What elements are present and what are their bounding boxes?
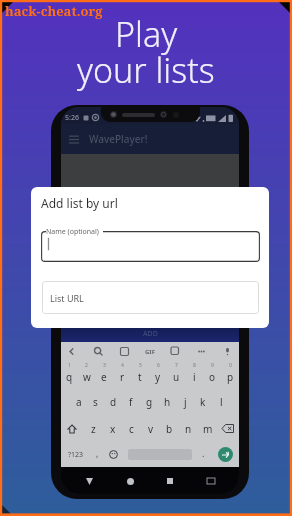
button[interactable]: Back xyxy=(66,346,77,357)
button[interactable]: l xyxy=(212,388,230,415)
staticText: List URL xyxy=(50,292,84,304)
staticText: k xyxy=(200,395,206,409)
staticText: 5:26 xyxy=(65,113,79,123)
button[interactable]: Translate xyxy=(170,346,181,357)
button[interactable]: g xyxy=(140,388,158,415)
button[interactable]: Menu xyxy=(68,133,80,145)
staticText: j xyxy=(184,395,187,409)
staticText: 4 xyxy=(121,362,124,369)
staticText: t xyxy=(138,370,142,384)
staticText: c xyxy=(129,422,134,436)
button[interactable]: j xyxy=(176,388,194,415)
button[interactable]: Keyboard xyxy=(199,469,223,493)
staticText: e xyxy=(101,370,107,384)
staticText: d xyxy=(110,395,117,409)
staticText: i xyxy=(193,370,196,384)
staticText: r xyxy=(120,370,125,384)
staticText: h xyxy=(164,395,171,409)
staticText: p xyxy=(227,370,234,384)
button[interactable]: a xyxy=(70,388,87,415)
button[interactable]: b xyxy=(160,415,179,442)
staticText: ?123 xyxy=(68,450,84,460)
staticText: . xyxy=(202,447,205,459)
button[interactable]: ?123 xyxy=(61,442,91,467)
button[interactable]: 8 xyxy=(185,361,203,388)
button[interactable]: Name (optional) xyxy=(41,231,260,262)
button[interactable]: Search xyxy=(93,346,104,357)
button[interactable]: Recents xyxy=(158,469,182,493)
staticText: g xyxy=(146,395,153,409)
button[interactable]: x xyxy=(103,415,122,442)
button[interactable]: Emoji xyxy=(103,442,123,467)
button[interactable]: v xyxy=(141,415,160,442)
staticText: a xyxy=(76,395,82,409)
button[interactable]: . xyxy=(192,442,214,467)
button[interactable]: 9 xyxy=(203,361,221,388)
staticText: y xyxy=(155,370,161,384)
button[interactable]: z xyxy=(83,415,103,442)
button[interactable]: m xyxy=(198,415,217,442)
staticText: , xyxy=(96,447,99,459)
button[interactable]: 1 xyxy=(61,361,78,388)
staticText: v xyxy=(148,422,154,436)
staticText: b xyxy=(166,422,173,436)
button[interactable]: 5 xyxy=(131,361,149,388)
staticText: your lists xyxy=(77,47,215,93)
button[interactable]: 6 xyxy=(149,361,167,388)
staticText: n xyxy=(185,422,192,436)
button[interactable]: 2 xyxy=(78,361,95,388)
staticText: u xyxy=(173,370,180,384)
staticText: Add list by url xyxy=(41,195,118,211)
button[interactable]: f xyxy=(122,388,140,415)
staticText: 1 xyxy=(68,362,71,369)
button[interactable]: Home xyxy=(118,469,142,493)
staticText: 2 xyxy=(85,362,88,369)
staticText: Name (optional) xyxy=(46,227,99,237)
staticText: 7 xyxy=(175,362,178,369)
staticText: 3 xyxy=(103,362,106,369)
staticText: s xyxy=(93,395,98,409)
button[interactable]: Enter xyxy=(218,447,233,462)
staticText: ADD xyxy=(143,329,158,339)
staticText: o xyxy=(209,370,216,384)
staticText: m xyxy=(203,422,213,436)
button[interactable]: Voice input xyxy=(222,346,233,357)
staticText: WavePlayer! xyxy=(89,132,148,146)
button[interactable]: List URL xyxy=(42,281,259,314)
staticText: l xyxy=(220,395,223,409)
button[interactable]: Menu xyxy=(61,124,239,154)
button[interactable]: , xyxy=(91,442,103,467)
button[interactable]: Back xyxy=(77,469,101,493)
staticText: q xyxy=(66,370,73,384)
staticText: f xyxy=(129,395,133,409)
button[interactable]: 4 xyxy=(113,361,131,388)
staticText: 8 xyxy=(193,362,196,369)
staticText: 9 xyxy=(211,362,214,369)
staticText: 0 xyxy=(229,362,232,369)
button[interactable]: Backspace xyxy=(217,415,239,442)
button[interactable]: 3 xyxy=(95,361,113,388)
button[interactable]: GIF xyxy=(145,348,155,356)
staticText: 6 xyxy=(157,362,160,369)
button[interactable]: 7 xyxy=(167,361,185,388)
staticText: hack-cheat.org xyxy=(5,2,103,20)
button[interactable]: c xyxy=(122,415,141,442)
button[interactable]: h xyxy=(158,388,176,415)
button[interactable]: n xyxy=(179,415,198,442)
button[interactable]: k xyxy=(194,388,212,415)
staticText: Play xyxy=(115,11,178,57)
staticText: z xyxy=(91,422,96,436)
button[interactable]: More xyxy=(196,346,207,357)
button[interactable]: s xyxy=(87,388,104,415)
button[interactable]: 0 xyxy=(221,361,239,388)
staticText: x xyxy=(110,422,116,436)
button[interactable]: Stickers xyxy=(119,346,130,357)
button[interactable]: d xyxy=(104,388,122,415)
staticText: w xyxy=(83,370,91,384)
button[interactable]: Shift xyxy=(61,415,83,442)
staticText: 5 xyxy=(139,362,142,369)
